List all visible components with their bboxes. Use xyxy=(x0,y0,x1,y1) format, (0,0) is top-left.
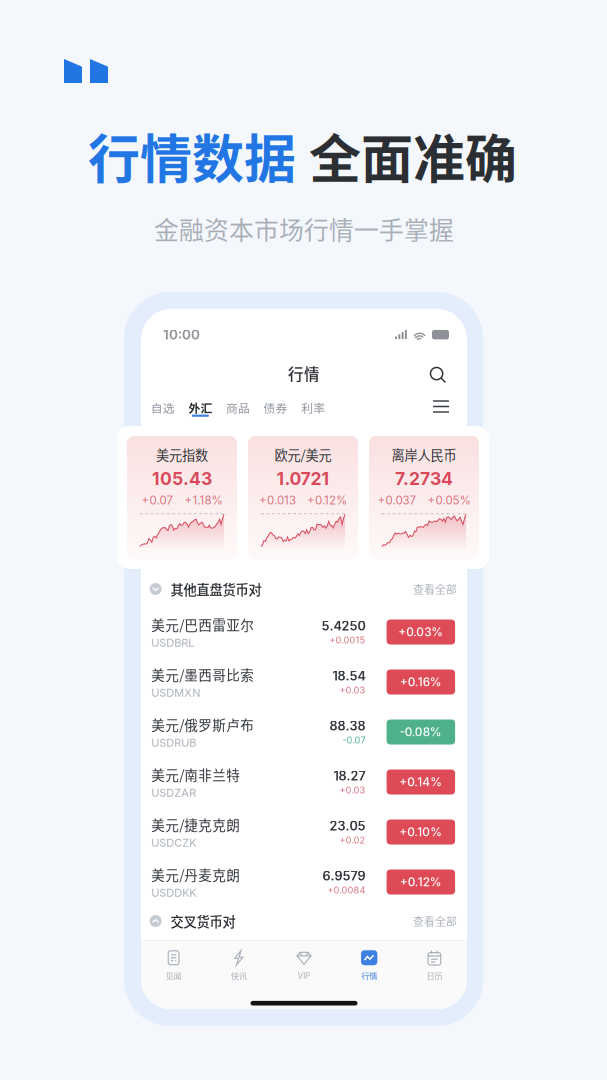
button[interactable]: More xyxy=(433,400,449,412)
button[interactable]: 行情 xyxy=(337,939,402,985)
button[interactable]: 美元/墨西哥比索 xyxy=(141,657,467,707)
staticText: +0.03 xyxy=(340,685,366,696)
staticText: 查看全部 xyxy=(413,581,457,597)
staticText: 债券 xyxy=(264,399,288,416)
staticText: VIP xyxy=(298,969,310,981)
staticText: 全面准确 xyxy=(309,118,517,193)
button[interactable]: 美元/丹麦克朗 xyxy=(141,857,467,907)
staticText: 美元/墨西哥比索 xyxy=(151,664,254,684)
button[interactable]: 利率 xyxy=(294,390,332,428)
staticText: 105.43 xyxy=(152,468,212,489)
staticText: 美元/巴西雷亚尔 xyxy=(151,614,254,634)
staticText: 18.27 xyxy=(334,768,366,783)
staticText: +0.02 xyxy=(340,835,366,846)
staticText: 行情 xyxy=(288,362,320,385)
staticText: +0.03 xyxy=(340,785,366,796)
staticText: 23.05 xyxy=(330,818,366,833)
staticText: 交叉货币对 xyxy=(171,911,236,931)
staticText: 查看全部 xyxy=(413,913,457,929)
button[interactable]: VIP xyxy=(271,939,337,985)
button[interactable]: 债券 xyxy=(257,390,294,428)
staticText: 5.4250 xyxy=(322,618,366,633)
staticText: +0.07 xyxy=(141,493,173,507)
button[interactable]: 美元指数 xyxy=(127,436,237,560)
staticText: +1.18% xyxy=(184,493,222,507)
staticText: +0.16% xyxy=(400,675,442,689)
staticText: 美元/俄罗斯卢布 xyxy=(151,714,254,734)
button[interactable]: 离岸人民币 xyxy=(369,436,479,560)
staticText: 自选 xyxy=(151,399,175,416)
staticText: 10:00 xyxy=(163,326,200,343)
button[interactable]: 欧元/美元 xyxy=(248,436,358,560)
staticText: 美元/南非兰特 xyxy=(151,764,240,784)
staticText: 行情数据 xyxy=(88,118,296,193)
button[interactable]: 美元/捷克克朗 xyxy=(141,807,467,857)
staticText: 快讯 xyxy=(231,969,247,981)
staticText: 利率 xyxy=(301,399,325,416)
staticText: USDDKK xyxy=(151,886,196,899)
staticText: 离岸人民币 xyxy=(391,445,456,464)
staticText: +0.14% xyxy=(399,775,442,789)
button[interactable]: 快讯 xyxy=(206,939,271,985)
staticText: 88.38 xyxy=(330,718,366,733)
staticText: 美元/捷克克朗 xyxy=(151,814,240,834)
staticText: 7.2734 xyxy=(395,468,453,489)
staticText: 外汇 xyxy=(188,399,212,416)
staticText: 1.0721 xyxy=(276,468,329,489)
staticText: 金融资本市场行情一手掌握 xyxy=(154,211,454,247)
staticText: +0.05% xyxy=(427,493,470,507)
staticText: +0.0084 xyxy=(328,885,366,896)
staticText: 美元指数 xyxy=(156,445,208,464)
button[interactable]: Search xyxy=(429,366,447,384)
staticText: USDMXN xyxy=(151,686,200,699)
button[interactable]: 见闻 xyxy=(141,939,206,985)
staticText: 商品 xyxy=(226,399,250,416)
staticText: +0.10% xyxy=(399,825,442,839)
staticText: 欧元/美元 xyxy=(274,445,331,464)
staticText: 其他直盘货币对 xyxy=(171,579,262,599)
staticText: 见闻 xyxy=(166,969,182,981)
button[interactable]: 商品 xyxy=(219,390,257,428)
staticText: +0.12% xyxy=(307,493,347,507)
staticText: +0.12% xyxy=(400,875,442,889)
staticText: -0.07 xyxy=(343,735,366,746)
staticText: 行情 xyxy=(361,969,377,981)
button[interactable]: 美元/巴西雷亚尔 xyxy=(141,607,467,657)
staticText: +0.03% xyxy=(398,625,443,639)
staticText: 日历 xyxy=(426,969,442,981)
staticText: -0.08% xyxy=(400,725,442,739)
staticText: USDBRL xyxy=(151,636,194,649)
button[interactable]: 查看全部 xyxy=(413,581,457,597)
button[interactable]: 美元/俄罗斯卢布 xyxy=(141,707,467,757)
staticText: +0.037 xyxy=(377,493,416,507)
staticText: 美元/丹麦克朗 xyxy=(151,864,240,884)
staticText: USDCZK xyxy=(151,836,196,849)
staticText: +0.0015 xyxy=(330,635,366,646)
staticText: USDRUB xyxy=(151,736,196,749)
staticText: 6.9579 xyxy=(323,868,366,883)
staticText: +0.013 xyxy=(259,493,296,507)
staticText: 18.54 xyxy=(333,668,366,683)
button[interactable]: 日历 xyxy=(402,939,467,985)
button[interactable]: 查看全部 xyxy=(413,913,457,929)
button[interactable]: 美元/南非兰特 xyxy=(141,757,467,807)
button[interactable]: 外汇 xyxy=(182,390,219,428)
staticText: USDZAR xyxy=(151,786,196,799)
button[interactable]: 自选 xyxy=(144,390,182,428)
